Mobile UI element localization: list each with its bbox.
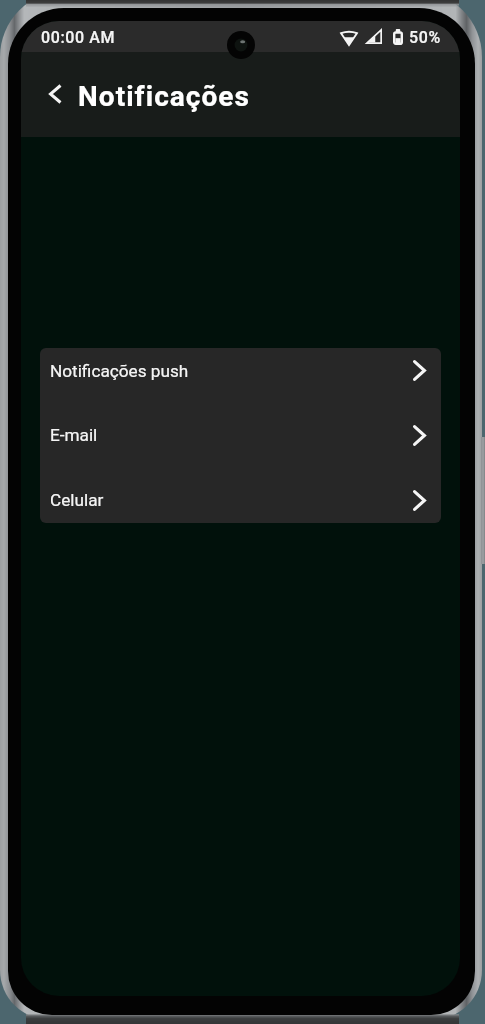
staticText: Notificações — [78, 80, 250, 113]
staticText: E-mail — [50, 425, 98, 445]
button[interactable]: Notificações push — [40, 348, 441, 393]
staticText: 50% — [409, 28, 441, 47]
button[interactable]: E-mail — [40, 393, 441, 477]
button[interactable]: Celular — [40, 477, 441, 523]
staticText: Celular — [50, 490, 104, 510]
staticText: 00:00 AM — [41, 28, 116, 47]
staticText: Notificações push — [50, 361, 189, 381]
button[interactable]: Back — [27, 72, 71, 116]
